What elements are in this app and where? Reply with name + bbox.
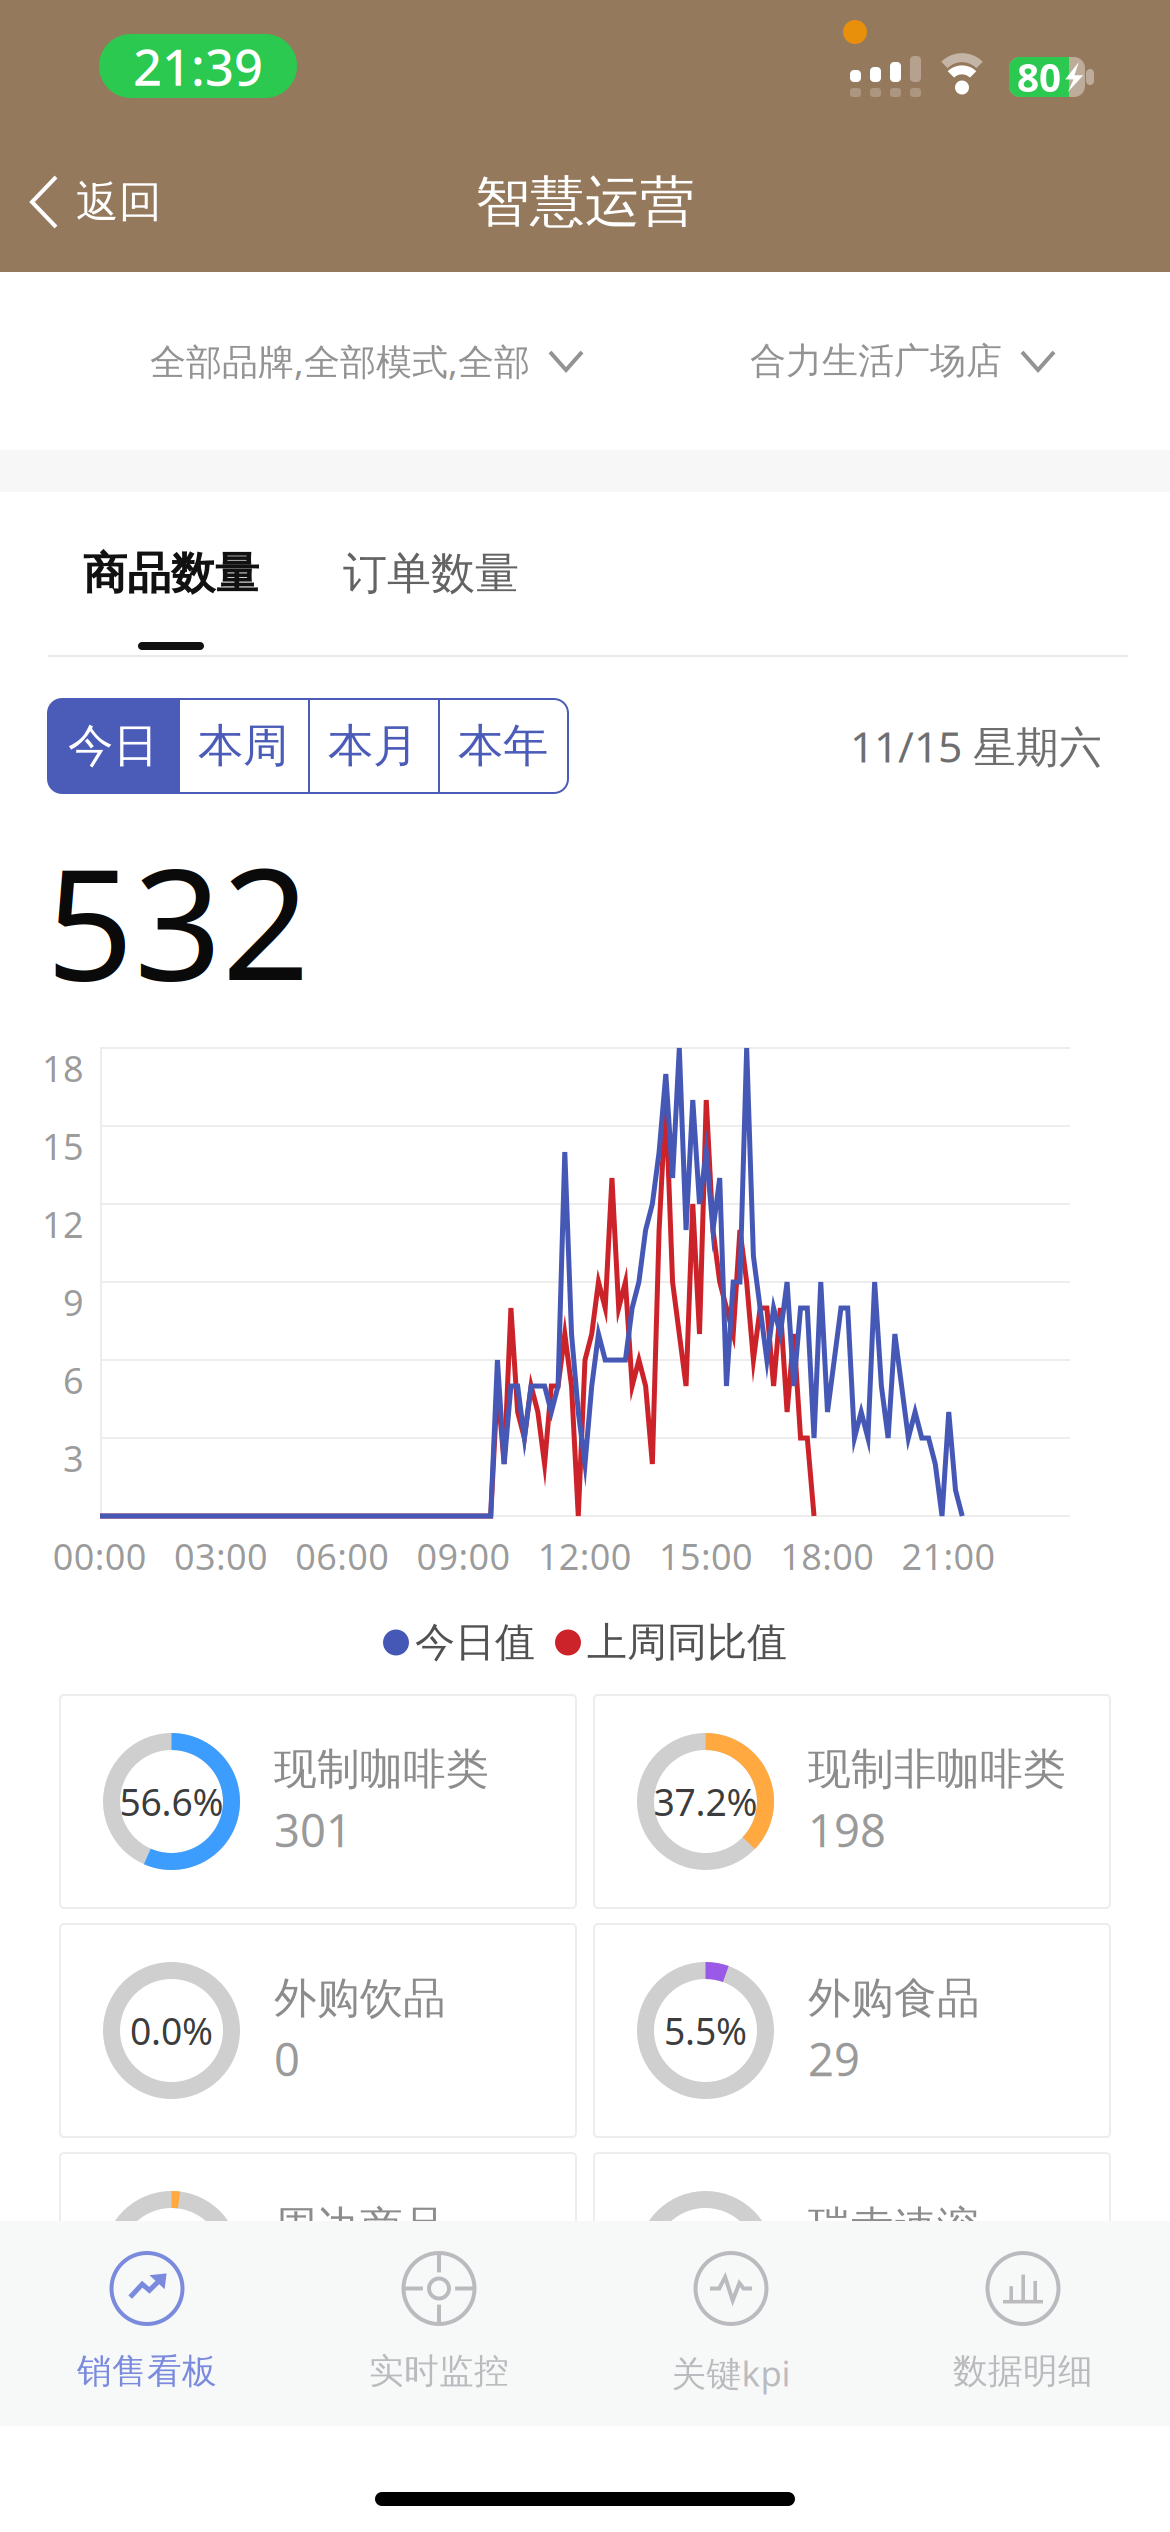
staticText: 15 xyxy=(42,1122,84,1170)
staticText: 301 xyxy=(274,1800,352,1860)
staticText: 瑞幸速溶 xyxy=(808,2201,980,2254)
staticText: 现制咖啡类 xyxy=(274,1743,489,1796)
staticText: 198 xyxy=(808,1800,886,1860)
staticText: 15:00 xyxy=(659,1532,753,1580)
button[interactable] xyxy=(594,2153,1110,2366)
button[interactable]: 商品数量 xyxy=(78,492,264,655)
staticText: 合力生活广场店 xyxy=(750,339,1002,383)
staticText: 本年 xyxy=(458,718,548,774)
staticText: 80 xyxy=(1017,51,1061,103)
staticText: 18:00 xyxy=(780,1532,874,1580)
staticText: 3 xyxy=(63,1434,84,1482)
button[interactable]: 本周 xyxy=(178,699,308,793)
staticText: 12:00 xyxy=(538,1532,632,1580)
staticText: 03:00 xyxy=(174,1532,268,1580)
staticText: 12 xyxy=(42,1200,84,1248)
button[interactable]: 56.6% xyxy=(60,1695,576,1908)
button[interactable]: 37.2% xyxy=(594,1695,1110,1908)
staticText: 订单数量 xyxy=(343,546,519,600)
staticText: 实时监控 xyxy=(369,2350,509,2393)
staticText: 全部品牌,全部模式,全部 xyxy=(150,337,530,385)
staticText: 现制非咖啡类 xyxy=(808,1743,1066,1796)
button[interactable]: 全部品牌,全部模式,全部 xyxy=(150,272,586,450)
staticText: 21:39 xyxy=(133,32,263,100)
staticText: 29 xyxy=(808,2029,860,2089)
staticText: 周边商品 xyxy=(274,2201,446,2254)
staticText: 21:00 xyxy=(901,1532,995,1580)
staticText: 18 xyxy=(42,1044,84,1092)
button[interactable]: 返回 xyxy=(0,132,192,272)
staticText: 销售看板 xyxy=(77,2350,217,2393)
staticText: 数据明细 xyxy=(953,2350,1093,2393)
staticText: 商品数量 xyxy=(83,546,259,600)
staticText: 11/15 星期六 xyxy=(850,718,1102,774)
button[interactable]: 实时监控 xyxy=(293,2251,585,2415)
staticText: 关键kpi xyxy=(671,2350,790,2396)
staticText: 56.6% xyxy=(119,1777,223,1826)
staticText: 00:00 xyxy=(53,1532,147,1580)
button[interactable]: 0.0% xyxy=(60,1924,576,2137)
staticText: 06:00 xyxy=(295,1532,389,1580)
staticText: 智慧运营 xyxy=(475,168,695,235)
button[interactable]: 订单数量 xyxy=(338,492,524,655)
staticText: 6 xyxy=(63,1356,84,1404)
staticText: 外购饮品 xyxy=(274,1972,446,2025)
staticText: 本周 xyxy=(198,718,288,774)
staticText: 上周同比值 xyxy=(587,1618,787,1667)
staticText: 返回 xyxy=(76,176,162,228)
staticText: 0 xyxy=(274,2029,300,2089)
staticText: 37.2% xyxy=(653,1777,757,1826)
button[interactable]: 本年 xyxy=(438,699,568,793)
staticText: 本月 xyxy=(328,718,418,774)
button[interactable]: 数据明细 xyxy=(877,2251,1169,2415)
button[interactable]: 今日 xyxy=(48,699,178,793)
staticText: 今日 xyxy=(68,718,158,774)
staticText: 09:00 xyxy=(416,1532,510,1580)
staticText: 9 xyxy=(63,1278,84,1326)
button[interactable]: 销售看板 xyxy=(1,2251,293,2415)
staticText: 0.0% xyxy=(130,2006,213,2055)
button[interactable]: 合力生活广场店 xyxy=(750,272,1062,450)
staticText: 今日值 xyxy=(415,1618,535,1667)
button[interactable] xyxy=(60,2153,576,2366)
staticText: 532 xyxy=(46,819,310,1022)
button[interactable]: 关键kpi xyxy=(585,2251,877,2415)
button[interactable]: 5.5% xyxy=(594,1924,1110,2137)
button[interactable]: 本月 xyxy=(308,699,438,793)
staticText: 外购食品 xyxy=(808,1972,980,2025)
staticText: 5.5% xyxy=(664,2006,747,2055)
